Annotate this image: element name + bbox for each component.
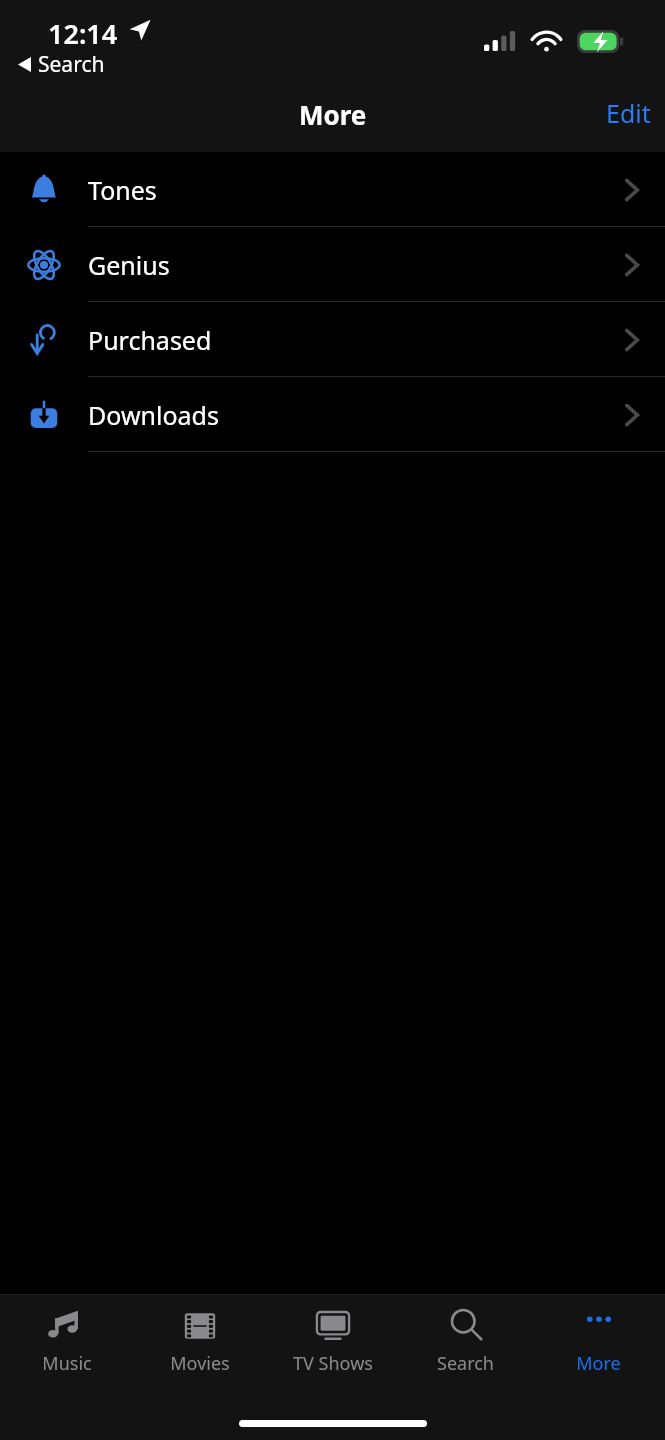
staticText: Purchased bbox=[88, 323, 212, 357]
button[interactable]: Downloads bbox=[0, 377, 665, 452]
staticText: More bbox=[299, 97, 367, 132]
button[interactable]: More bbox=[532, 1295, 665, 1392]
staticText: Search bbox=[38, 50, 105, 79]
button[interactable]: Music bbox=[0, 1295, 133, 1392]
button[interactable]: Purchased bbox=[0, 302, 665, 377]
button[interactable]: TV Shows bbox=[266, 1295, 399, 1392]
staticText: Edit bbox=[606, 96, 651, 130]
button[interactable]: Movies bbox=[133, 1295, 266, 1392]
button[interactable]: Edit bbox=[592, 90, 665, 136]
button[interactable]: Tones bbox=[0, 152, 665, 227]
staticText: Search bbox=[437, 1351, 494, 1376]
staticText: Music bbox=[42, 1351, 92, 1376]
button[interactable]: Genius bbox=[0, 227, 665, 302]
staticText: More bbox=[576, 1351, 621, 1376]
staticText: Tones bbox=[88, 173, 157, 207]
button[interactable]: Search bbox=[399, 1295, 532, 1392]
button[interactable]: Search bbox=[12, 46, 111, 83]
staticText: TV Shows bbox=[293, 1351, 373, 1376]
staticText: 12:14 bbox=[48, 15, 118, 52]
staticText: Movies bbox=[170, 1351, 230, 1376]
staticText: Downloads bbox=[88, 398, 219, 432]
staticText: Genius bbox=[88, 248, 170, 282]
